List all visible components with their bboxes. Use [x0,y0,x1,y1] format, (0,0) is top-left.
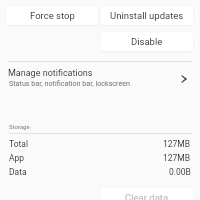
staticText: App [9,153,25,163]
staticText: Clear data [125,192,169,200]
staticText: Storage [9,123,30,130]
button[interactable]: Disable [101,32,193,51]
staticText: Total [9,139,28,149]
button[interactable] [0,62,200,99]
other: Open notification settings [178,73,190,85]
staticText: Manage notifications [8,68,93,79]
button[interactable]: Uninstall updates [101,6,193,25]
staticText: Force stop [30,10,75,21]
button[interactable] [0,151,200,165]
button[interactable]: Force stop [6,6,98,25]
button[interactable] [0,165,200,179]
button[interactable]: Clear data [101,188,193,200]
staticText: Status bar, notification bar, lockscreen [9,79,131,87]
staticText: 127MB [163,153,191,163]
staticText: Data [9,167,27,177]
button[interactable] [0,137,200,151]
staticText: 127MB [163,139,191,149]
staticText: Uninstall updates [110,10,184,21]
staticText: 0.00B [169,167,191,177]
staticText: Disable [131,36,163,47]
